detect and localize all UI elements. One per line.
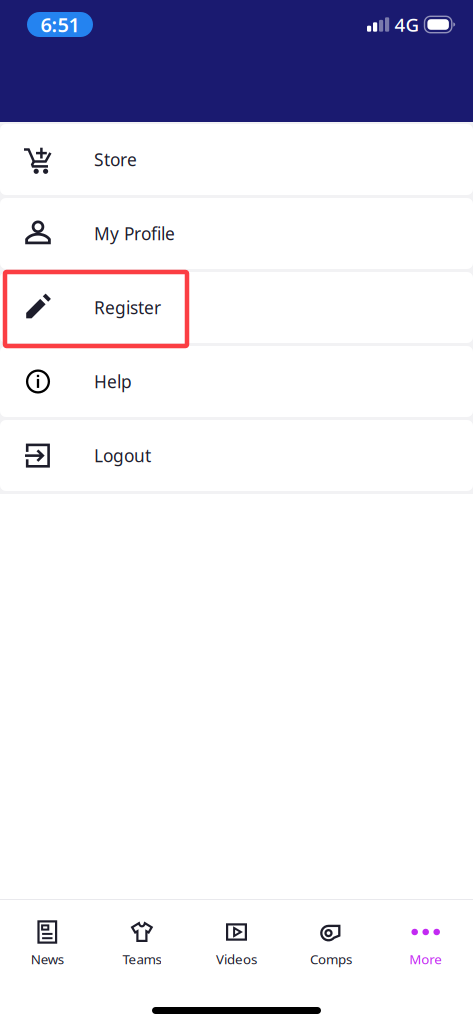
button[interactable]: My Profile xyxy=(0,198,473,269)
staticText: 4G xyxy=(394,12,419,37)
button[interactable]: More xyxy=(378,900,473,978)
staticText: My Profile xyxy=(94,222,175,245)
button[interactable]: Logout xyxy=(0,420,473,491)
staticText: 6:51 xyxy=(40,11,79,38)
button[interactable]: Videos xyxy=(189,900,284,978)
button[interactable]: Store xyxy=(0,124,473,195)
button[interactable]: Comps xyxy=(284,900,378,978)
staticText: Logout xyxy=(94,444,151,467)
staticText: Store xyxy=(94,148,137,171)
staticText: Teams xyxy=(122,950,161,968)
staticText: News xyxy=(31,950,64,968)
button[interactable]: News xyxy=(0,900,95,978)
button[interactable]: Teams xyxy=(95,900,189,978)
staticText: Help xyxy=(94,370,132,393)
button[interactable]: Help xyxy=(0,346,473,417)
staticText: Register xyxy=(94,296,161,319)
staticText: Videos xyxy=(216,950,257,968)
staticText: Comps xyxy=(310,950,352,968)
staticText: More xyxy=(409,950,442,968)
button[interactable]: Register xyxy=(0,272,473,343)
